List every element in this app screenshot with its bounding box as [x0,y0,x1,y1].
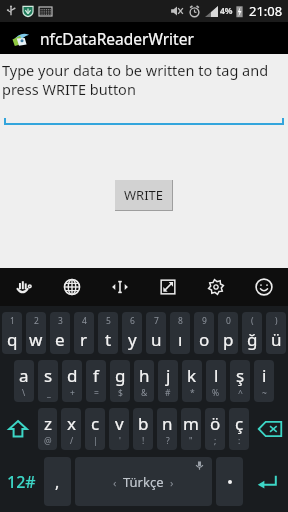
button[interactable]: z [38,408,57,450]
staticText: z [44,412,52,435]
button[interactable]: 9 [194,312,214,354]
button[interactable]: Handwriting input [0,268,48,306]
button[interactable]: Emoji [240,268,288,306]
button[interactable]: 7 [146,312,166,354]
button[interactable]: a [14,360,34,402]
button[interactable]: l [206,360,226,402]
staticText: ) [275,315,278,327]
button[interactable]: d [62,360,82,402]
button[interactable]: 8 [170,312,190,354]
staticText: i [262,364,267,387]
staticText: c [91,412,100,435]
button[interactable]: m [181,408,201,450]
staticText: d [67,364,78,387]
button[interactable]: s [38,360,58,402]
staticText: @ [44,435,52,447]
staticText: v [115,412,124,435]
button[interactable]: n [157,408,177,450]
staticText: 21:08 [249,2,283,20]
button[interactable]: WRITE [115,180,172,210]
staticText: 8 [178,315,183,327]
button[interactable]: Cursor control [96,268,144,306]
staticText: a [19,364,29,387]
button[interactable]: 5 [98,312,118,354]
button[interactable]: , [44,457,71,506]
staticText: 12# [7,471,36,493]
button[interactable]: 6 [122,312,142,354]
staticText: j [166,364,171,387]
button[interactable]: 2 [26,312,46,354]
staticText: k [187,364,197,387]
button[interactable]: j [158,360,178,402]
staticText: & [141,387,148,399]
button[interactable]: c [85,408,105,450]
staticText: ı [178,328,183,351]
staticText: _ [47,387,51,399]
button[interactable]: Resize keyboard [144,268,192,306]
button[interactable]: Keyboard settings [192,268,240,306]
button[interactable]: ( [242,312,262,354]
button[interactable]: ) [266,312,286,354]
staticText: › [170,475,174,490]
staticText: # [165,387,171,399]
staticText: = [94,387,99,399]
staticText: 5 [106,315,111,327]
button[interactable]: 0 [218,312,238,354]
staticText: w [29,328,43,351]
staticText: p [223,328,234,351]
staticText: o [199,328,210,351]
staticText: % [212,387,220,399]
button[interactable]: f [86,360,106,402]
button[interactable] [216,457,243,506]
staticText: 0 [226,315,231,327]
staticText: n [162,412,173,435]
button[interactable]: 3 [50,312,70,354]
staticText: $ [118,387,123,399]
button[interactable]: k [182,360,202,402]
staticText: h [139,364,150,387]
staticText: ‹ [113,475,117,490]
staticText: + [70,387,75,399]
button[interactable]: ö [205,408,225,450]
button[interactable]: ‹ [75,457,212,506]
staticText: Type your data to be written to tag and … [2,60,286,99]
staticText: t [105,328,112,351]
staticText: ? [166,435,170,447]
staticText: 4 [82,315,87,327]
button[interactable] [0,118,288,128]
staticText: l [214,364,219,387]
staticText: 6 [130,315,135,327]
button[interactable]: Backspace [251,406,288,452]
staticText: b [138,412,149,435]
staticText: 4% [220,5,233,17]
staticText: ğ [247,328,258,351]
staticText: q [7,328,18,351]
staticText: ç [235,412,244,435]
button[interactable]: h [134,360,154,402]
staticText: | [93,435,98,447]
button[interactable]: g [110,360,130,402]
button[interactable]: x [61,408,81,450]
button[interactable]: b [133,408,153,450]
button[interactable]: ç [229,408,249,450]
staticText: m [183,412,199,435]
staticText: , [55,471,60,493]
staticText: u [151,328,162,351]
staticText: ş [236,364,245,387]
button[interactable]: 1 [2,312,22,354]
staticText: Türkçe [123,473,164,491]
button[interactable]: Change language [48,268,96,306]
button[interactable]: Shift [0,406,36,452]
staticText: s [44,364,53,387]
staticText: f [93,364,99,387]
staticText: ( [251,315,254,327]
button[interactable]: 12# [0,454,42,509]
staticText: * [190,387,195,399]
staticText: 2 [34,315,39,327]
button[interactable]: 4 [74,312,94,354]
button[interactable]: ş [230,360,250,402]
staticText: x [67,412,76,435]
button[interactable]: Enter [245,454,288,509]
button[interactable]: i [254,360,274,402]
button[interactable]: v [109,408,129,450]
